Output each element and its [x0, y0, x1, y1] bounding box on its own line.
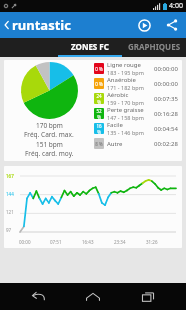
staticText: 24 %: [94, 93, 104, 104]
staticText: 171 - 182 bpm: [107, 84, 144, 91]
staticText: 151 bpm: [36, 140, 63, 149]
button[interactable]: Home: [76, 283, 110, 310]
staticText: 97: [6, 227, 12, 233]
staticText: 8 %: [95, 141, 103, 147]
staticText: Fréq. card. moy.: [25, 149, 74, 158]
staticText: 00:02:28: [154, 140, 178, 148]
staticText: 183 - 195 bpm: [107, 69, 144, 76]
staticText: 144: [6, 191, 14, 197]
staticText: Perte graisse: [107, 106, 144, 114]
staticText: 4:00: [169, 1, 183, 11]
button[interactable]: Play: [130, 12, 158, 38]
staticText: 00:04:54: [154, 125, 178, 133]
staticText: 16 %: [94, 123, 104, 134]
staticText: 00:00:00: [154, 65, 178, 73]
staticText: Facile: [107, 121, 123, 129]
button[interactable]: 24 %: [94, 91, 180, 106]
button[interactable]: 8 %: [94, 136, 180, 151]
staticText: 167: [6, 173, 14, 179]
staticText: 0 %: [95, 66, 103, 72]
button[interactable]: ZONES FC: [58, 38, 122, 55]
button[interactable]: Share: [158, 12, 186, 38]
staticText: 00:00: [19, 239, 31, 245]
staticText: 147 - 158 bpm: [107, 114, 144, 121]
staticText: 121: [6, 209, 14, 215]
staticText: 16:43: [82, 239, 94, 245]
staticText: 07:51: [50, 239, 62, 245]
staticText: 00:16:28: [154, 110, 178, 118]
staticText: 00:07:35: [154, 95, 178, 103]
staticText: Anaérobie: [107, 76, 136, 84]
button[interactable]: runtastic, navigate up: [0, 12, 79, 38]
button[interactable]: Back: [21, 283, 55, 310]
staticText: 52 %: [94, 108, 104, 119]
button[interactable]: 52 %: [94, 106, 180, 121]
button[interactable]: Recent apps: [131, 283, 165, 310]
staticText: Fréq. Card. max.: [24, 130, 74, 139]
staticText: Ligne rouge: [107, 61, 141, 69]
staticText: 159 - 170 bpm: [107, 99, 144, 106]
staticText: Autre: [107, 140, 123, 148]
button[interactable]: 0 %: [94, 76, 180, 91]
staticText: Aérobic: [107, 91, 129, 99]
staticText: GRAPHIQUES: [128, 41, 181, 52]
button[interactable]: 0 %: [94, 61, 180, 76]
button[interactable]: 16 %: [94, 121, 180, 136]
staticText: 00:00:00: [154, 80, 178, 88]
staticText: 170 bpm: [36, 121, 63, 130]
button[interactable]: GRAPHIQUES: [122, 38, 186, 55]
staticText: ZONES FC: [71, 41, 109, 52]
staticText: runtastic: [12, 16, 71, 34]
staticText: 0 %: [95, 81, 103, 87]
staticText: 135 - 146 bpm: [107, 129, 144, 136]
staticText: 31:26: [146, 239, 158, 245]
staticText: 23:34: [114, 239, 126, 245]
